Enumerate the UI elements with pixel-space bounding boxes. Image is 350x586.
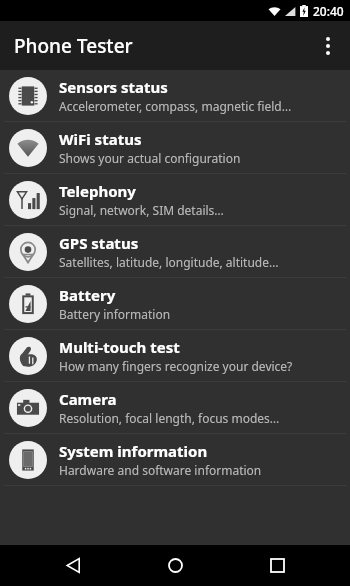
staticText: Phone Tester [14,33,133,59]
button[interactable]: System information [0,434,350,486]
button[interactable]: Back [44,545,102,586]
button[interactable]: Camera [0,382,350,434]
staticText: Battery information [59,306,171,322]
staticText: Signal, network, SIM details… [59,202,224,218]
staticText: 20:40 [313,3,344,19]
staticText: System information [59,441,208,461]
staticText: Accelerometer, compass, magnetic field… [59,98,292,114]
staticText: Sensors status [59,77,168,97]
staticText: Shows your actual configuration [59,150,241,166]
staticText: Telephony [59,181,136,201]
button[interactable]: GPS status [0,226,350,278]
staticText: Resolution, focal length, focus modes… [59,410,280,426]
staticText: WiFi status [59,129,142,149]
button[interactable]: More options [306,24,350,68]
button[interactable]: Home [146,545,204,586]
staticText: How many fingers recognize your device? [59,358,293,374]
button[interactable]: Recent apps [248,545,306,586]
button[interactable]: Sensors status [0,70,350,122]
staticText: Camera [59,389,117,409]
button[interactable]: Telephony [0,174,350,226]
button[interactable]: Battery [0,278,350,330]
button[interactable]: Multi-touch test [0,330,350,382]
staticText: Multi-touch test [59,337,180,357]
staticText: Hardware and software information [59,462,262,478]
staticText: GPS status [59,233,139,253]
staticText: Satellites, latitude, longitude, altitud… [59,254,279,270]
staticText: Battery [59,285,116,305]
button[interactable]: WiFi status [0,122,350,174]
